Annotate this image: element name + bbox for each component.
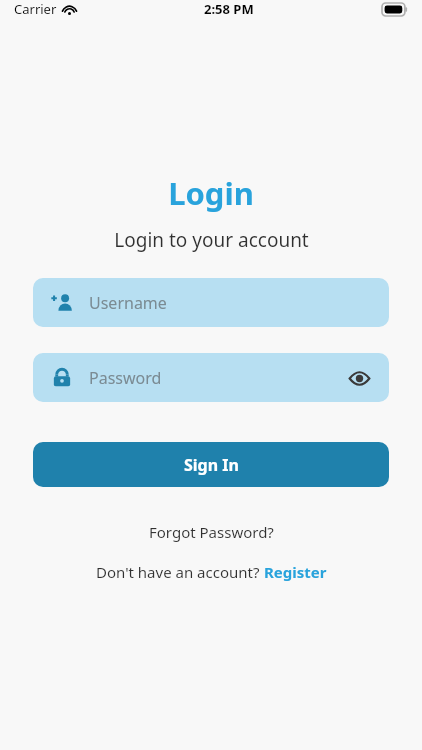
staticText: Password — [89, 367, 162, 389]
staticText: Login to your account — [114, 227, 309, 253]
staticText: Carrier — [14, 0, 57, 18]
staticText: Sign In — [184, 454, 239, 476]
staticText: 2:58 PM — [204, 0, 254, 18]
staticText: Login — [168, 172, 254, 214]
staticText: Don't have an account? — [96, 562, 264, 582]
button[interactable]: Sign In — [33, 442, 389, 487]
staticText: Forgot Password? — [149, 522, 274, 542]
button[interactable]: Show password — [346, 365, 372, 391]
button[interactable]: Username — [33, 278, 389, 327]
button[interactable]: Password — [33, 353, 389, 402]
staticText: Register — [264, 562, 327, 582]
button[interactable]: Forgot Password? — [141, 519, 282, 545]
button[interactable]: Register — [264, 562, 327, 582]
staticText: Username — [89, 292, 167, 314]
